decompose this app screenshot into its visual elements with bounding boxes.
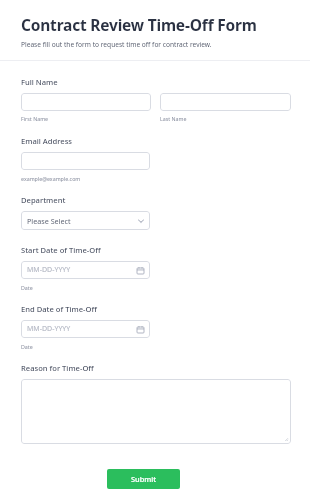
staticText: First Name — [21, 115, 49, 122]
staticText: Start Date of Time-Off — [21, 245, 101, 255]
button[interactable]: Start Date of Time-Off — [21, 261, 150, 279]
staticText: Date — [21, 284, 33, 291]
button[interactable]: Reason for Time-Off — [21, 379, 291, 444]
staticText: Reason for Time-Off — [21, 363, 94, 373]
staticText: MM-DD-YYYY — [27, 265, 71, 275]
staticText: Date — [21, 343, 33, 350]
staticText: Contract Review Time-Off Form — [21, 14, 257, 35]
staticText: Last Name — [160, 115, 187, 122]
button[interactable]: End Date of Time-Off — [21, 320, 150, 338]
button[interactable]: Email Address — [21, 152, 150, 170]
staticText: Email Address — [21, 136, 73, 146]
button[interactable]: Department — [21, 211, 150, 230]
staticText: End Date of Time-Off — [21, 304, 97, 314]
button[interactable]: Submit — [107, 469, 180, 489]
other: Pick date — [137, 326, 144, 333]
button[interactable]: Last Name — [160, 93, 291, 111]
staticText: Full Name — [21, 77, 58, 87]
button[interactable]: First Name — [21, 93, 151, 111]
other: Pick date — [137, 267, 144, 274]
staticText: Submit — [131, 474, 157, 484]
other: Open department list — [138, 218, 144, 224]
staticText: MM-DD-YYYY — [27, 324, 71, 334]
staticText: Department — [21, 195, 66, 205]
staticText: Please fill out the form to request time… — [21, 40, 212, 49]
staticText: example@example.com — [21, 175, 81, 182]
staticText: Please Select — [27, 216, 71, 226]
